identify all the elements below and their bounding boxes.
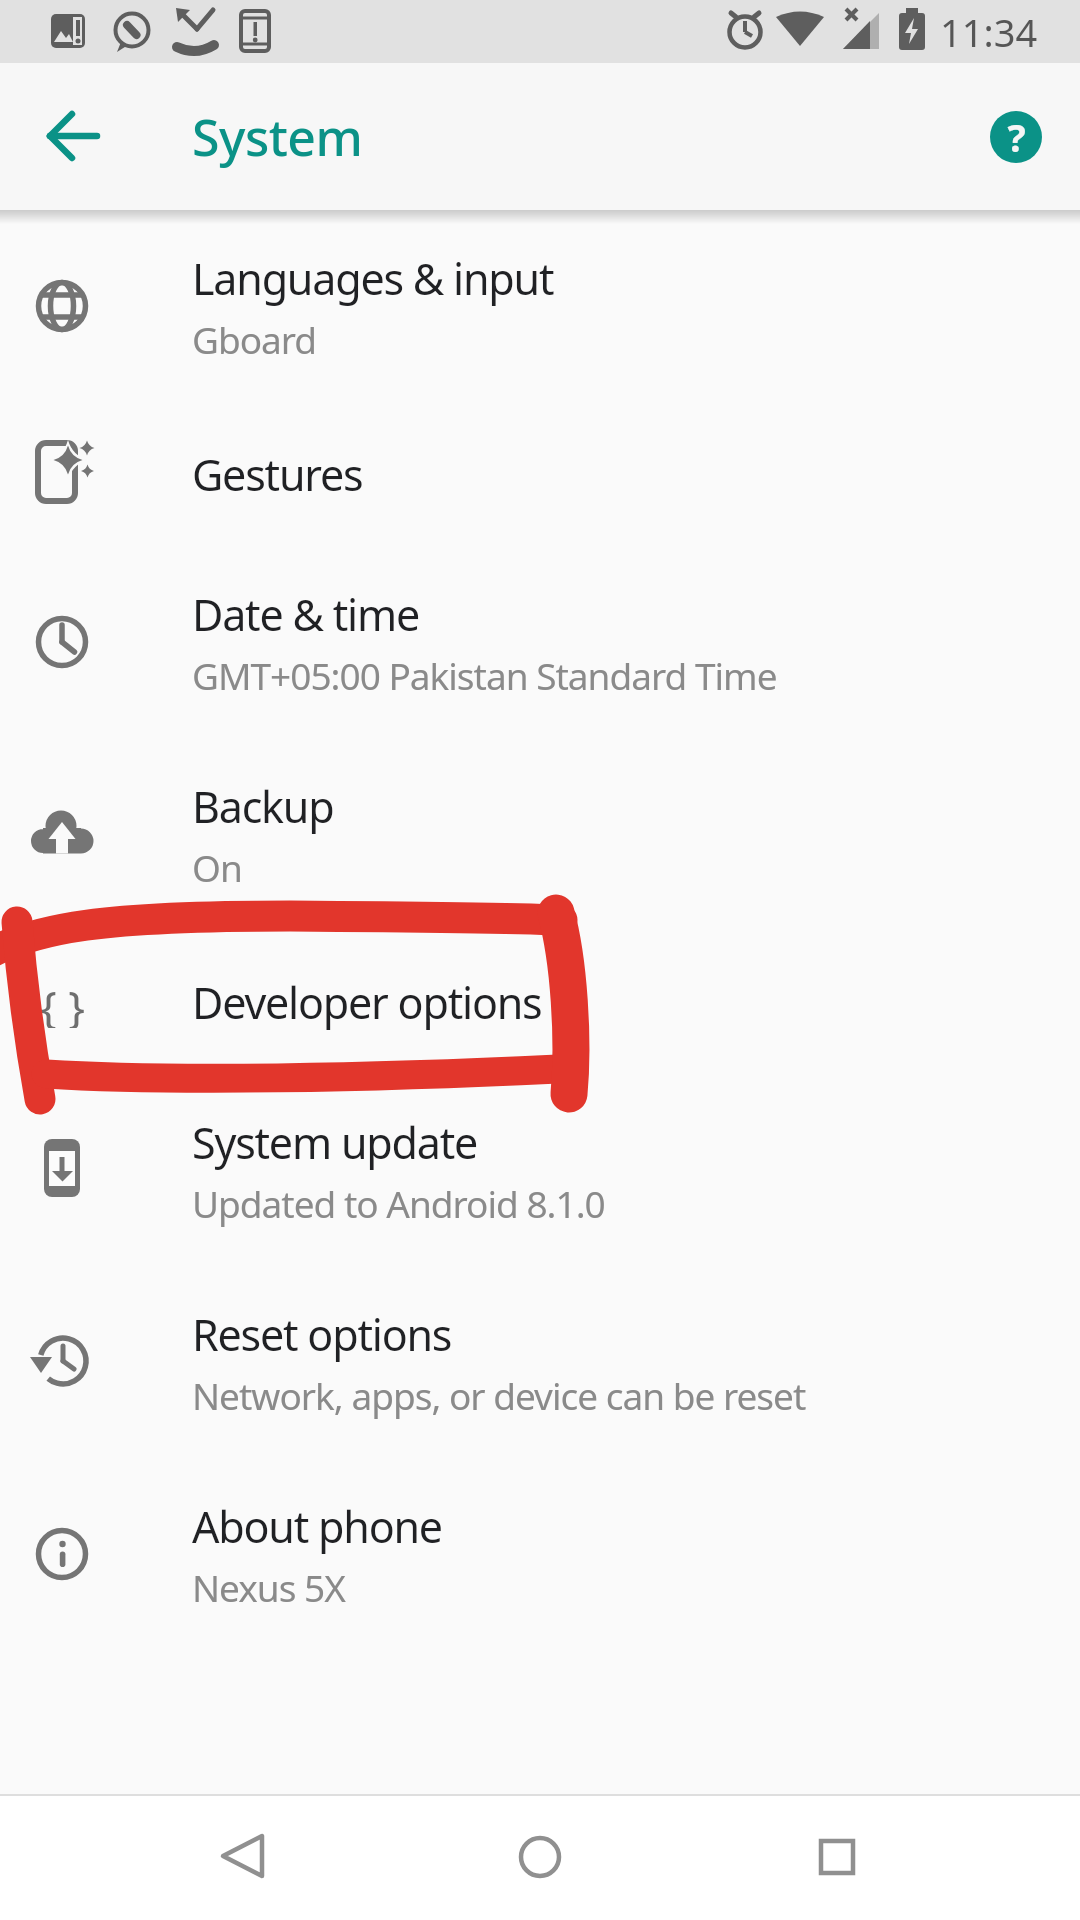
button[interactable]: { } <box>0 930 1080 1074</box>
button[interactable]: Reset options <box>0 1266 1080 1458</box>
staticText: GMT+05:00 Pakistan Standard Time <box>192 650 777 700</box>
button[interactable]: Date & time <box>0 546 1080 738</box>
staticText: Developer options <box>192 973 542 1032</box>
staticText: On <box>192 842 242 892</box>
staticText: 11:34 <box>940 6 1038 58</box>
staticText: Gboard <box>192 314 317 364</box>
staticText: Date & time <box>192 585 419 644</box>
staticText: Languages & input <box>192 249 554 308</box>
button[interactable]: Gestures <box>0 402 1080 546</box>
staticText: { } <box>40 976 85 1028</box>
staticText: System <box>192 103 363 171</box>
staticText: Network, apps, or device can be reset <box>192 1370 806 1420</box>
staticText: Reset options <box>192 1305 452 1364</box>
button[interactable]: Languages & input <box>0 210 1080 402</box>
staticText: System update <box>192 1113 478 1172</box>
button[interactable] <box>763 1794 911 1920</box>
staticText: Nexus 5X <box>192 1562 345 1612</box>
staticText: Backup <box>192 777 334 836</box>
staticText: Gestures <box>192 445 363 504</box>
button[interactable]: Backup <box>0 738 1080 930</box>
staticText: Updated to Android 8.1.0 <box>192 1178 605 1228</box>
button[interactable]: About phone <box>0 1458 1080 1650</box>
button[interactable] <box>169 1794 317 1920</box>
staticText: ? <box>1007 111 1026 163</box>
button[interactable]: ? <box>990 111 1042 163</box>
button[interactable] <box>466 1794 614 1920</box>
button[interactable]: System update <box>0 1074 1080 1266</box>
staticText: About phone <box>192 1497 442 1556</box>
